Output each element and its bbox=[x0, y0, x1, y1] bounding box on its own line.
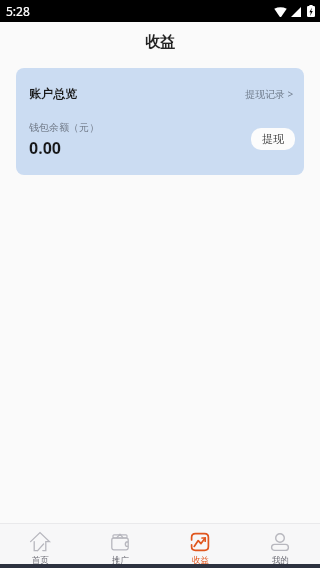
staticText: 我的 bbox=[272, 555, 289, 564]
staticText: 收益 bbox=[192, 555, 209, 564]
staticText: 提现记录 > bbox=[245, 87, 294, 101]
button[interactable]: Promotion bbox=[80, 524, 160, 564]
button[interactable]: Home bbox=[0, 524, 80, 564]
staticText: 5:28 bbox=[6, 3, 30, 19]
staticText: 提现 bbox=[262, 132, 284, 146]
staticText: 首页 bbox=[32, 555, 49, 564]
button[interactable]: Earnings bbox=[160, 524, 240, 564]
staticText: 0.00 bbox=[29, 137, 61, 159]
button[interactable]: 提现 bbox=[251, 128, 295, 150]
staticText: 推广 bbox=[112, 555, 129, 564]
staticText: 收益 bbox=[145, 33, 175, 52]
staticText: 账户总览 bbox=[29, 86, 77, 101]
staticText: 钱包余额（元） bbox=[29, 121, 99, 134]
button[interactable]: Mine bbox=[240, 524, 320, 564]
button[interactable]: 提现记录 > bbox=[243, 84, 296, 104]
